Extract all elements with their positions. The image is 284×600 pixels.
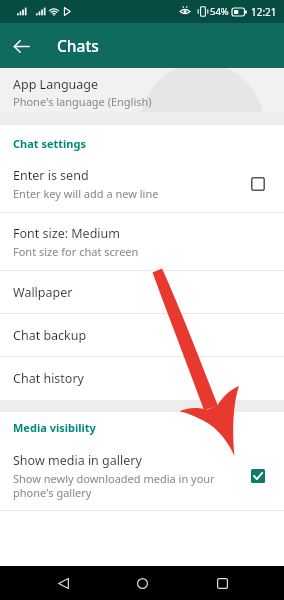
staticText: Show media in gallery xyxy=(13,452,142,469)
button[interactable]: Chat backup xyxy=(0,314,284,356)
staticText: Font size for chat screen xyxy=(13,244,139,259)
staticText: Media visibility xyxy=(13,420,96,435)
staticText: Chat settings xyxy=(13,136,86,151)
staticText: Chat history xyxy=(13,370,84,387)
staticText: Phone's language (English) xyxy=(13,94,152,109)
staticText: Wallpaper xyxy=(13,284,73,301)
button[interactable]: Font size: Medium xyxy=(0,213,284,270)
button[interactable]: Chat history xyxy=(0,357,284,400)
staticText: Show newly downloaded media in your phon… xyxy=(13,471,215,500)
staticText: 54% xyxy=(210,5,229,18)
staticText: 12:21 xyxy=(251,5,277,19)
button[interactable]: Wallpaper xyxy=(0,271,284,313)
button[interactable]: Back xyxy=(46,566,80,600)
button[interactable]: Recents xyxy=(205,566,239,600)
staticText: Enter is send xyxy=(13,167,89,184)
button[interactable]: Home xyxy=(125,566,159,600)
staticText: Chats xyxy=(57,35,99,56)
button[interactable]: Enter is send xyxy=(0,155,284,212)
button[interactable]: Back xyxy=(0,25,42,67)
button[interactable]: Show media in gallery xyxy=(0,441,284,510)
staticText: App Language xyxy=(13,76,99,93)
button[interactable]: App Language xyxy=(0,68,284,112)
staticText: Chat backup xyxy=(13,327,87,344)
staticText: Enter key will add a new line xyxy=(13,186,159,201)
staticText: Font size: Medium xyxy=(13,225,120,242)
